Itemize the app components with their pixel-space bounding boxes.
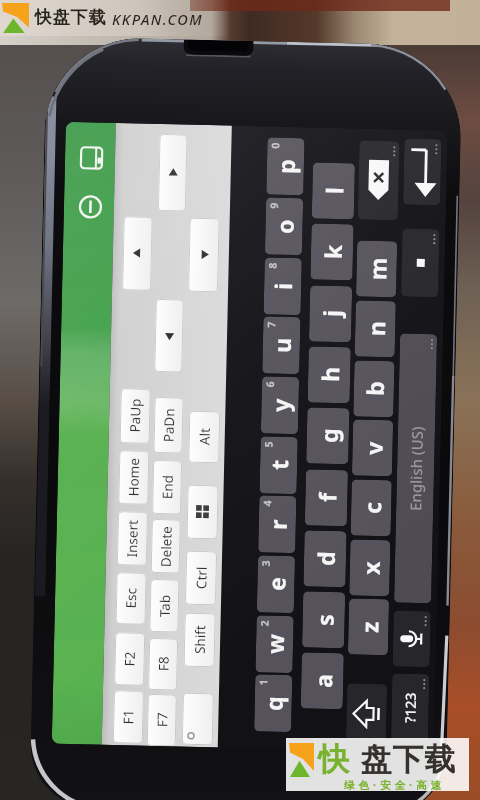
staticText: 快盘下载 [34, 7, 106, 28]
button[interactable] [182, 693, 214, 745]
staticText: t [263, 459, 294, 470]
staticText: d [310, 550, 341, 566]
staticText: z [353, 620, 385, 633]
button[interactable]: h [308, 346, 351, 403]
staticText: Alt [196, 428, 214, 445]
button[interactable]: l [312, 162, 355, 219]
staticText: w [259, 633, 290, 654]
button[interactable]: z [348, 598, 389, 655]
button[interactable]: End [152, 460, 182, 514]
staticText: 1 [256, 678, 270, 686]
button[interactable]: Insert [117, 511, 148, 566]
button[interactable]: Alt [188, 411, 220, 463]
staticText: Ctrl [192, 566, 211, 589]
staticText: x [355, 560, 386, 575]
button[interactable]: PaDn [153, 397, 184, 453]
button[interactable] [393, 610, 431, 667]
staticText: p [270, 158, 301, 174]
button[interactable]: u [262, 316, 300, 374]
staticText: ?123 [400, 692, 420, 723]
staticText: Home [124, 457, 143, 497]
button[interactable] [154, 299, 184, 372]
staticText: j [315, 310, 347, 317]
staticText: F8 [154, 656, 173, 671]
staticText: 2 [257, 619, 272, 627]
button[interactable]: c [351, 479, 392, 536]
button[interactable]: i [263, 257, 302, 315]
staticText: c [356, 501, 387, 514]
staticText: English (US) [405, 426, 427, 511]
button[interactable]: o [265, 197, 303, 255]
button[interactable]: F1 [113, 690, 144, 744]
button[interactable]: English (US) [394, 333, 437, 603]
button[interactable]: F2 [114, 632, 145, 686]
staticText: KKPAN.COM [112, 9, 204, 29]
button[interactable]: g [306, 407, 349, 464]
staticText: 5 [261, 440, 276, 448]
button[interactable]: x [349, 539, 390, 596]
button[interactable]: Home [118, 450, 149, 505]
button[interactable]: w [255, 615, 294, 673]
button[interactable] [158, 134, 188, 212]
staticText: Tab [156, 594, 174, 617]
button[interactable] [122, 216, 153, 291]
button[interactable]: r [258, 495, 296, 553]
button[interactable]: y [261, 376, 299, 434]
button[interactable]: b [353, 360, 395, 417]
button[interactable]: Esc [115, 572, 147, 625]
staticText: PaDn [160, 408, 178, 442]
button[interactable]: 快 [286, 738, 469, 791]
button[interactable]: ?123 [391, 673, 429, 741]
button[interactable]: Ctrl [185, 551, 217, 605]
staticText: F1 [119, 709, 137, 725]
button[interactable]: 快盘下载 [0, 0, 250, 36]
staticText: 4 [260, 499, 274, 507]
button[interactable] [401, 228, 439, 297]
staticText: 0 [268, 141, 282, 149]
button[interactable]: m [356, 240, 397, 297]
button[interactable]: j [309, 285, 352, 342]
button[interactable] [52, 122, 116, 745]
staticText: i [267, 282, 298, 290]
button[interactable]: t [259, 436, 298, 494]
staticText: F7 [153, 712, 171, 727]
button[interactable] [403, 138, 442, 205]
button[interactable]: p [266, 137, 305, 195]
button[interactable]: PaUp [120, 388, 151, 444]
staticText: 6 [263, 380, 277, 388]
button[interactable]: Tab [149, 579, 179, 632]
staticText: o [268, 218, 300, 234]
staticText: r [262, 518, 293, 530]
button[interactable]: F8 [148, 638, 178, 690]
button[interactable]: q [254, 674, 292, 732]
button[interactable]: k [310, 223, 354, 280]
button[interactable]: v [352, 419, 393, 476]
staticText: 快 [318, 740, 349, 779]
staticText: F2 [120, 651, 139, 667]
staticText: b [359, 381, 390, 396]
staticText: Insert [123, 519, 142, 558]
button[interactable]: n [355, 300, 396, 357]
staticText: h [314, 366, 345, 382]
button[interactable]: e [257, 555, 295, 613]
staticText: s [308, 613, 340, 626]
staticText: k [317, 244, 348, 259]
button[interactable] [186, 485, 219, 539]
button[interactable]: f [305, 469, 348, 526]
staticText: 盘下载 [360, 740, 456, 779]
button[interactable]: Shift [183, 613, 216, 667]
button[interactable]: Delete [151, 519, 181, 573]
button[interactable]: F7 [147, 694, 177, 746]
button[interactable]: s [302, 591, 345, 648]
staticText: g [313, 427, 344, 443]
staticText: f [311, 492, 342, 502]
staticText: 绿色·安全·高速 [344, 778, 445, 792]
button[interactable]: a [301, 652, 344, 709]
button[interactable]: d [303, 530, 347, 587]
button[interactable] [346, 683, 387, 740]
staticText: Delete [157, 525, 176, 567]
button[interactable] [188, 218, 220, 292]
staticText: u [266, 337, 297, 353]
button[interactable] [358, 140, 399, 220]
staticText: PaUp [126, 398, 145, 433]
